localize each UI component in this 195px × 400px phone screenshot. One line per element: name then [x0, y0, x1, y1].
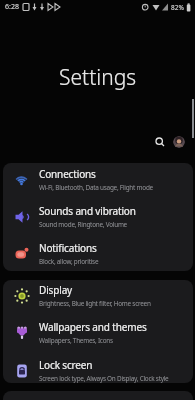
- staticText: Display: [39, 283, 73, 297]
- staticText: 6:28: [5, 2, 19, 12]
- staticText: Settings: [59, 63, 137, 92]
- staticText: Wi-Fi, Bluetooth, Data usage, Flight mod…: [39, 183, 153, 192]
- staticText: Sounds and vibration: [39, 204, 136, 218]
- button[interactable]: Display: [3, 277, 193, 314]
- button[interactable]: [173, 136, 185, 148]
- staticText: 82%: [171, 3, 184, 12]
- staticText: Connections: [39, 167, 96, 181]
- button[interactable]: Notifications: [3, 235, 193, 272]
- button[interactable]: Wallpapers and themes: [3, 314, 193, 351]
- staticText: Sound mode, Ringtone, Volume: [39, 220, 127, 229]
- staticText: Block, allow, prioritise: [39, 257, 99, 266]
- staticText: Wallpapers and themes: [39, 320, 147, 334]
- button[interactable]: [152, 134, 167, 149]
- button[interactable]: Lock screen: [3, 352, 193, 389]
- button[interactable]: Sounds and vibration: [3, 198, 193, 235]
- staticText: Lock screen: [39, 358, 93, 372]
- staticText: Brightness, Blue light filter, Home scre…: [39, 299, 151, 308]
- staticText: Notifications: [39, 241, 97, 255]
- staticText: Screen lock type, Always On Display, Clo…: [39, 374, 169, 383]
- staticText: Wallpapers, Themes, Icons: [39, 336, 113, 345]
- button[interactable]: Connections: [3, 161, 193, 198]
